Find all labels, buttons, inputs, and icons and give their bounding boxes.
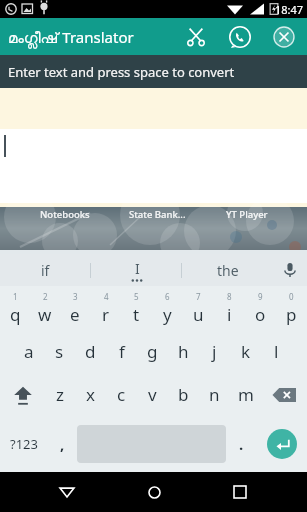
button[interactable]: Close bbox=[267, 20, 301, 54]
button[interactable]: Enter bbox=[267, 429, 297, 459]
staticText: മംഗ്ലീഷ് Translator bbox=[8, 27, 134, 47]
button[interactable]: ?123 bbox=[0, 416, 47, 472]
staticText: u bbox=[193, 303, 204, 326]
staticText: 5 bbox=[134, 291, 139, 302]
button[interactable]: 7 bbox=[183, 286, 214, 330]
staticText: t bbox=[133, 303, 140, 326]
button[interactable]: l bbox=[261, 330, 292, 373]
button[interactable]: v bbox=[137, 373, 168, 416]
button[interactable]: 8 bbox=[214, 286, 245, 330]
button[interactable]: h bbox=[168, 330, 199, 373]
button[interactable]: c bbox=[106, 373, 137, 416]
staticText: f bbox=[119, 340, 125, 363]
button[interactable]: n bbox=[199, 373, 230, 416]
staticText: 6 bbox=[165, 291, 170, 302]
staticText: r bbox=[102, 303, 110, 326]
staticText: 9 bbox=[258, 291, 263, 302]
button[interactable]: Shift bbox=[0, 373, 45, 416]
staticText: 1 bbox=[13, 291, 18, 302]
button[interactable]: a bbox=[14, 330, 44, 373]
button[interactable]: z bbox=[45, 373, 75, 416]
staticText: . bbox=[239, 434, 244, 454]
button[interactable]: Enter text and press space to convert bbox=[0, 55, 307, 88]
staticText: o bbox=[255, 303, 266, 326]
button[interactable]: Backspace bbox=[261, 373, 307, 416]
button[interactable]: 1 bbox=[0, 286, 30, 330]
staticText: the bbox=[217, 261, 239, 280]
staticText: c bbox=[117, 383, 126, 406]
button[interactable]: s bbox=[44, 330, 75, 373]
button[interactable]: Share to WhatsApp bbox=[223, 20, 257, 54]
staticText: g bbox=[147, 340, 158, 363]
staticText: p bbox=[286, 303, 297, 326]
button[interactable]: d bbox=[75, 330, 106, 373]
button[interactable]: 5 bbox=[121, 286, 152, 330]
button[interactable]: the bbox=[182, 254, 273, 286]
staticText: 2 bbox=[43, 291, 48, 302]
button[interactable]: 9 bbox=[245, 286, 276, 330]
button[interactable]: , bbox=[47, 416, 77, 472]
button[interactable]: Cut bbox=[179, 20, 213, 54]
staticText: k bbox=[241, 340, 251, 363]
staticText: h bbox=[178, 340, 189, 363]
staticText: Enter text and press space to convert bbox=[8, 63, 235, 81]
staticText: z bbox=[56, 383, 64, 406]
staticText: I bbox=[135, 259, 140, 278]
button[interactable]: 2 bbox=[30, 286, 60, 330]
button[interactable]: . bbox=[226, 416, 256, 472]
staticText: 7 bbox=[196, 291, 201, 302]
staticText: 3 bbox=[73, 291, 78, 302]
staticText: 8 bbox=[227, 291, 232, 302]
staticText: j bbox=[212, 340, 217, 363]
button[interactable]: if bbox=[0, 254, 91, 286]
button[interactable]: b bbox=[168, 373, 199, 416]
button[interactable]: 4 bbox=[90, 286, 121, 330]
staticText: Notebooks bbox=[40, 208, 90, 221]
staticText: b bbox=[178, 383, 189, 406]
staticText: w bbox=[38, 303, 52, 326]
button[interactable]: മംഗ്ലീഷ് Translator bbox=[8, 27, 179, 47]
button[interactable]: 3 bbox=[60, 286, 90, 330]
button[interactable]: Back bbox=[47, 472, 87, 512]
staticText: v bbox=[148, 383, 157, 406]
staticText: l bbox=[274, 340, 279, 363]
button[interactable]: 0 bbox=[276, 286, 307, 330]
staticText: a bbox=[24, 340, 34, 363]
staticText: i bbox=[227, 303, 232, 326]
staticText: ?123 bbox=[10, 435, 38, 453]
button[interactable]: x bbox=[75, 373, 106, 416]
staticText: 18:47 bbox=[275, 2, 304, 17]
button[interactable]: Home bbox=[134, 472, 174, 512]
button[interactable]: Voice input bbox=[273, 254, 307, 286]
button[interactable]: j bbox=[199, 330, 230, 373]
button[interactable]: 6 bbox=[152, 286, 183, 330]
staticText: 4 bbox=[104, 291, 109, 302]
staticText: State Bank... bbox=[129, 208, 186, 221]
button[interactable]: Recents bbox=[220, 472, 260, 512]
button[interactable]: m bbox=[230, 373, 261, 416]
button[interactable]: f bbox=[106, 330, 137, 373]
button[interactable]: g bbox=[137, 330, 168, 373]
staticText: m bbox=[238, 383, 254, 406]
staticText: q bbox=[10, 303, 21, 326]
staticText: s bbox=[55, 340, 64, 363]
staticText: YT Player bbox=[226, 208, 268, 221]
staticText: d bbox=[85, 340, 96, 363]
staticText: n bbox=[209, 383, 220, 406]
staticText: 0 bbox=[289, 291, 294, 302]
staticText: if bbox=[41, 261, 50, 280]
staticText: , bbox=[60, 434, 65, 454]
button[interactable]: k bbox=[230, 330, 261, 373]
staticText: e bbox=[70, 303, 80, 326]
staticText: y bbox=[163, 303, 172, 326]
staticText: x bbox=[86, 383, 95, 406]
button[interactable]: I bbox=[91, 254, 182, 286]
